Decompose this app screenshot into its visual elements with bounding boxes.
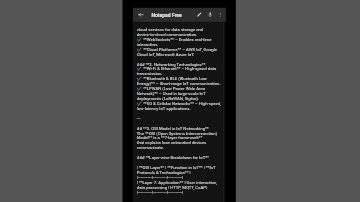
button[interactable]: Voice input xyxy=(207,11,214,18)
button[interactable]: Edit note xyxy=(196,11,203,18)
button[interactable]: Back xyxy=(138,11,145,18)
button[interactable]: More options xyxy=(217,11,224,18)
